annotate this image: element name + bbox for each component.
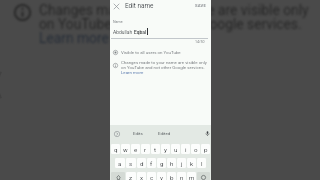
staticText: Changes made to your name are visible on… xyxy=(121,60,210,70)
button[interactable]: q xyxy=(111,144,120,154)
staticText: o xyxy=(194,146,198,153)
button[interactable]: b xyxy=(167,172,176,180)
button[interactable]: Shift xyxy=(111,172,125,180)
button[interactable]: Backspace xyxy=(197,172,210,180)
staticText: y xyxy=(164,146,167,153)
button[interactable]: Edited xyxy=(158,131,171,136)
button[interactable]: i xyxy=(181,144,190,154)
staticText: SAVE xyxy=(195,3,207,8)
staticText: Visible to all users on YouTube xyxy=(121,50,181,55)
button[interactable]: g xyxy=(157,158,166,168)
staticText: h xyxy=(170,160,174,167)
staticText: z xyxy=(129,174,133,180)
button[interactable]: t xyxy=(151,144,160,154)
button[interactable]: n xyxy=(177,172,186,180)
button[interactable]: Voice input xyxy=(204,130,210,136)
staticText: f xyxy=(150,160,153,167)
button[interactable]: More suggestions xyxy=(114,131,120,137)
staticText: g xyxy=(160,160,164,167)
staticText: n xyxy=(180,174,184,180)
staticText: Abdullah xyxy=(113,29,134,35)
staticText: w xyxy=(123,146,128,153)
staticText: q xyxy=(114,146,118,153)
button[interactable]: e xyxy=(131,144,140,154)
button[interactable]: j xyxy=(177,158,186,168)
staticText: Learn more xyxy=(39,30,109,46)
staticText: e xyxy=(134,146,138,153)
button[interactable]: Learn more xyxy=(121,70,144,75)
staticText: v xyxy=(160,174,163,180)
staticText: m xyxy=(189,174,195,180)
button[interactable]: c xyxy=(147,172,156,180)
button[interactable]: o xyxy=(191,144,200,154)
button[interactable]: r xyxy=(141,144,150,154)
staticText: x xyxy=(140,174,144,180)
staticText: s xyxy=(129,160,133,167)
staticText: i xyxy=(185,146,187,153)
button[interactable]: s xyxy=(126,158,136,168)
staticText: b xyxy=(170,174,174,180)
staticText: t xyxy=(154,146,157,153)
button[interactable]: h xyxy=(167,158,176,168)
button[interactable]: w xyxy=(121,144,130,154)
staticText: a xyxy=(118,160,122,167)
staticText: r xyxy=(144,146,147,153)
button[interactable]: v xyxy=(157,172,166,180)
staticText: c xyxy=(150,174,154,180)
staticText: Changes made to your name are visible on… xyxy=(39,2,309,18)
button[interactable]: k xyxy=(187,158,196,168)
button[interactable]: SAVE xyxy=(195,3,207,8)
staticText: l xyxy=(201,160,203,167)
staticText: Eqbal xyxy=(134,29,147,35)
staticText: 14/50 xyxy=(195,40,205,44)
staticText: d xyxy=(140,160,144,167)
staticText: k xyxy=(190,160,194,167)
staticText: Name xyxy=(113,20,123,24)
button[interactable]: f xyxy=(147,158,156,168)
staticText: j xyxy=(181,160,183,167)
button[interactable]: u xyxy=(171,144,180,154)
button[interactable]: Edits xyxy=(133,131,143,136)
button[interactable]: a xyxy=(115,158,125,168)
button[interactable]: m xyxy=(187,172,196,180)
button[interactable]: p xyxy=(201,144,210,154)
button[interactable]: y xyxy=(161,144,170,154)
staticText: u xyxy=(174,146,178,153)
staticText: p xyxy=(204,146,208,153)
button[interactable]: Close xyxy=(111,1,121,11)
button[interactable]: d xyxy=(137,158,146,168)
staticText: on YouTube and not other Google services… xyxy=(39,16,302,32)
button[interactable]: z xyxy=(126,172,136,180)
button[interactable]: x xyxy=(137,172,146,180)
staticText: Edit name xyxy=(125,2,154,10)
button[interactable]: l xyxy=(197,158,206,168)
